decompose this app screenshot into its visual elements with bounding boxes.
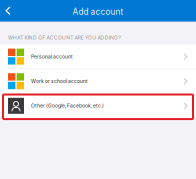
staticText: Add account: [72, 7, 123, 17]
button[interactable]: Personal account: [0, 45, 196, 69]
staticText: Personal account: [31, 54, 73, 60]
button[interactable]: Back: [0, 0, 17, 21]
button[interactable]: Other (Google, Facebook, etc.): [0, 94, 196, 118]
staticText: Work or school account: [31, 78, 88, 84]
button[interactable]: Work or school account: [0, 69, 196, 93]
staticText: Other (Google, Facebook, etc.): [31, 103, 104, 109]
staticText: WHAT KIND OF ACCOUNT ARE YOU ADDING?: [8, 35, 121, 41]
